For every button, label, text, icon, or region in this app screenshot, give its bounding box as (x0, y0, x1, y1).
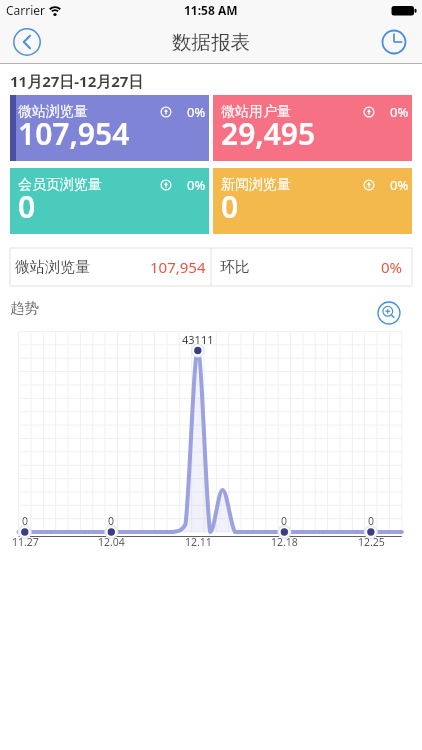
button[interactable]: 微站用户量 (213, 95, 412, 161)
staticText: 12.25 (358, 535, 385, 549)
staticText: 0 (18, 186, 36, 227)
staticText: 107,954 (150, 257, 206, 277)
staticText: 0 (221, 186, 239, 227)
staticText: 趋势 (10, 299, 39, 317)
staticText: 11月27日-12月27日 (10, 71, 144, 91)
staticText: 11.27 (12, 535, 39, 549)
staticText: 12.04 (98, 535, 125, 549)
staticText: 29,495 (221, 113, 316, 154)
staticText: 微站用户量 (221, 103, 291, 121)
button[interactable] (371, 295, 407, 331)
staticText: 12.11 (185, 535, 212, 549)
staticText: 11:58 AM (184, 2, 238, 18)
staticText: 12.18 (271, 535, 298, 549)
staticText: 107,954 (18, 113, 130, 154)
staticText: 0% (187, 176, 206, 194)
staticText: Carrier (6, 2, 46, 18)
staticText: 环比 (220, 258, 250, 277)
button[interactable] (5, 20, 49, 63)
staticText: 0 (368, 514, 375, 528)
staticText: 新闻浏览量 (221, 176, 291, 194)
button[interactable] (372, 20, 416, 63)
staticText: 0% (390, 176, 409, 194)
staticText: 0 (281, 514, 288, 528)
button[interactable]: 会员页浏览量 (10, 168, 209, 234)
staticText: 微站浏览量 (15, 258, 90, 277)
staticText: 0 (108, 514, 115, 528)
staticText: 会员页浏览量 (18, 176, 102, 194)
staticText: 数据报表 (172, 30, 250, 55)
button[interactable]: 微站浏览量 (10, 95, 209, 161)
staticText: 0 (22, 514, 29, 528)
button[interactable]: 微站浏览量 (15, 248, 206, 286)
button[interactable]: 新闻浏览量 (213, 168, 412, 234)
button[interactable]: 环比 (220, 248, 403, 286)
staticText: 0% (187, 103, 206, 121)
staticText: 0% (381, 257, 403, 277)
staticText: 微站浏览量 (18, 103, 88, 121)
staticText: 0% (390, 103, 409, 121)
staticText: 43111 (182, 332, 214, 346)
